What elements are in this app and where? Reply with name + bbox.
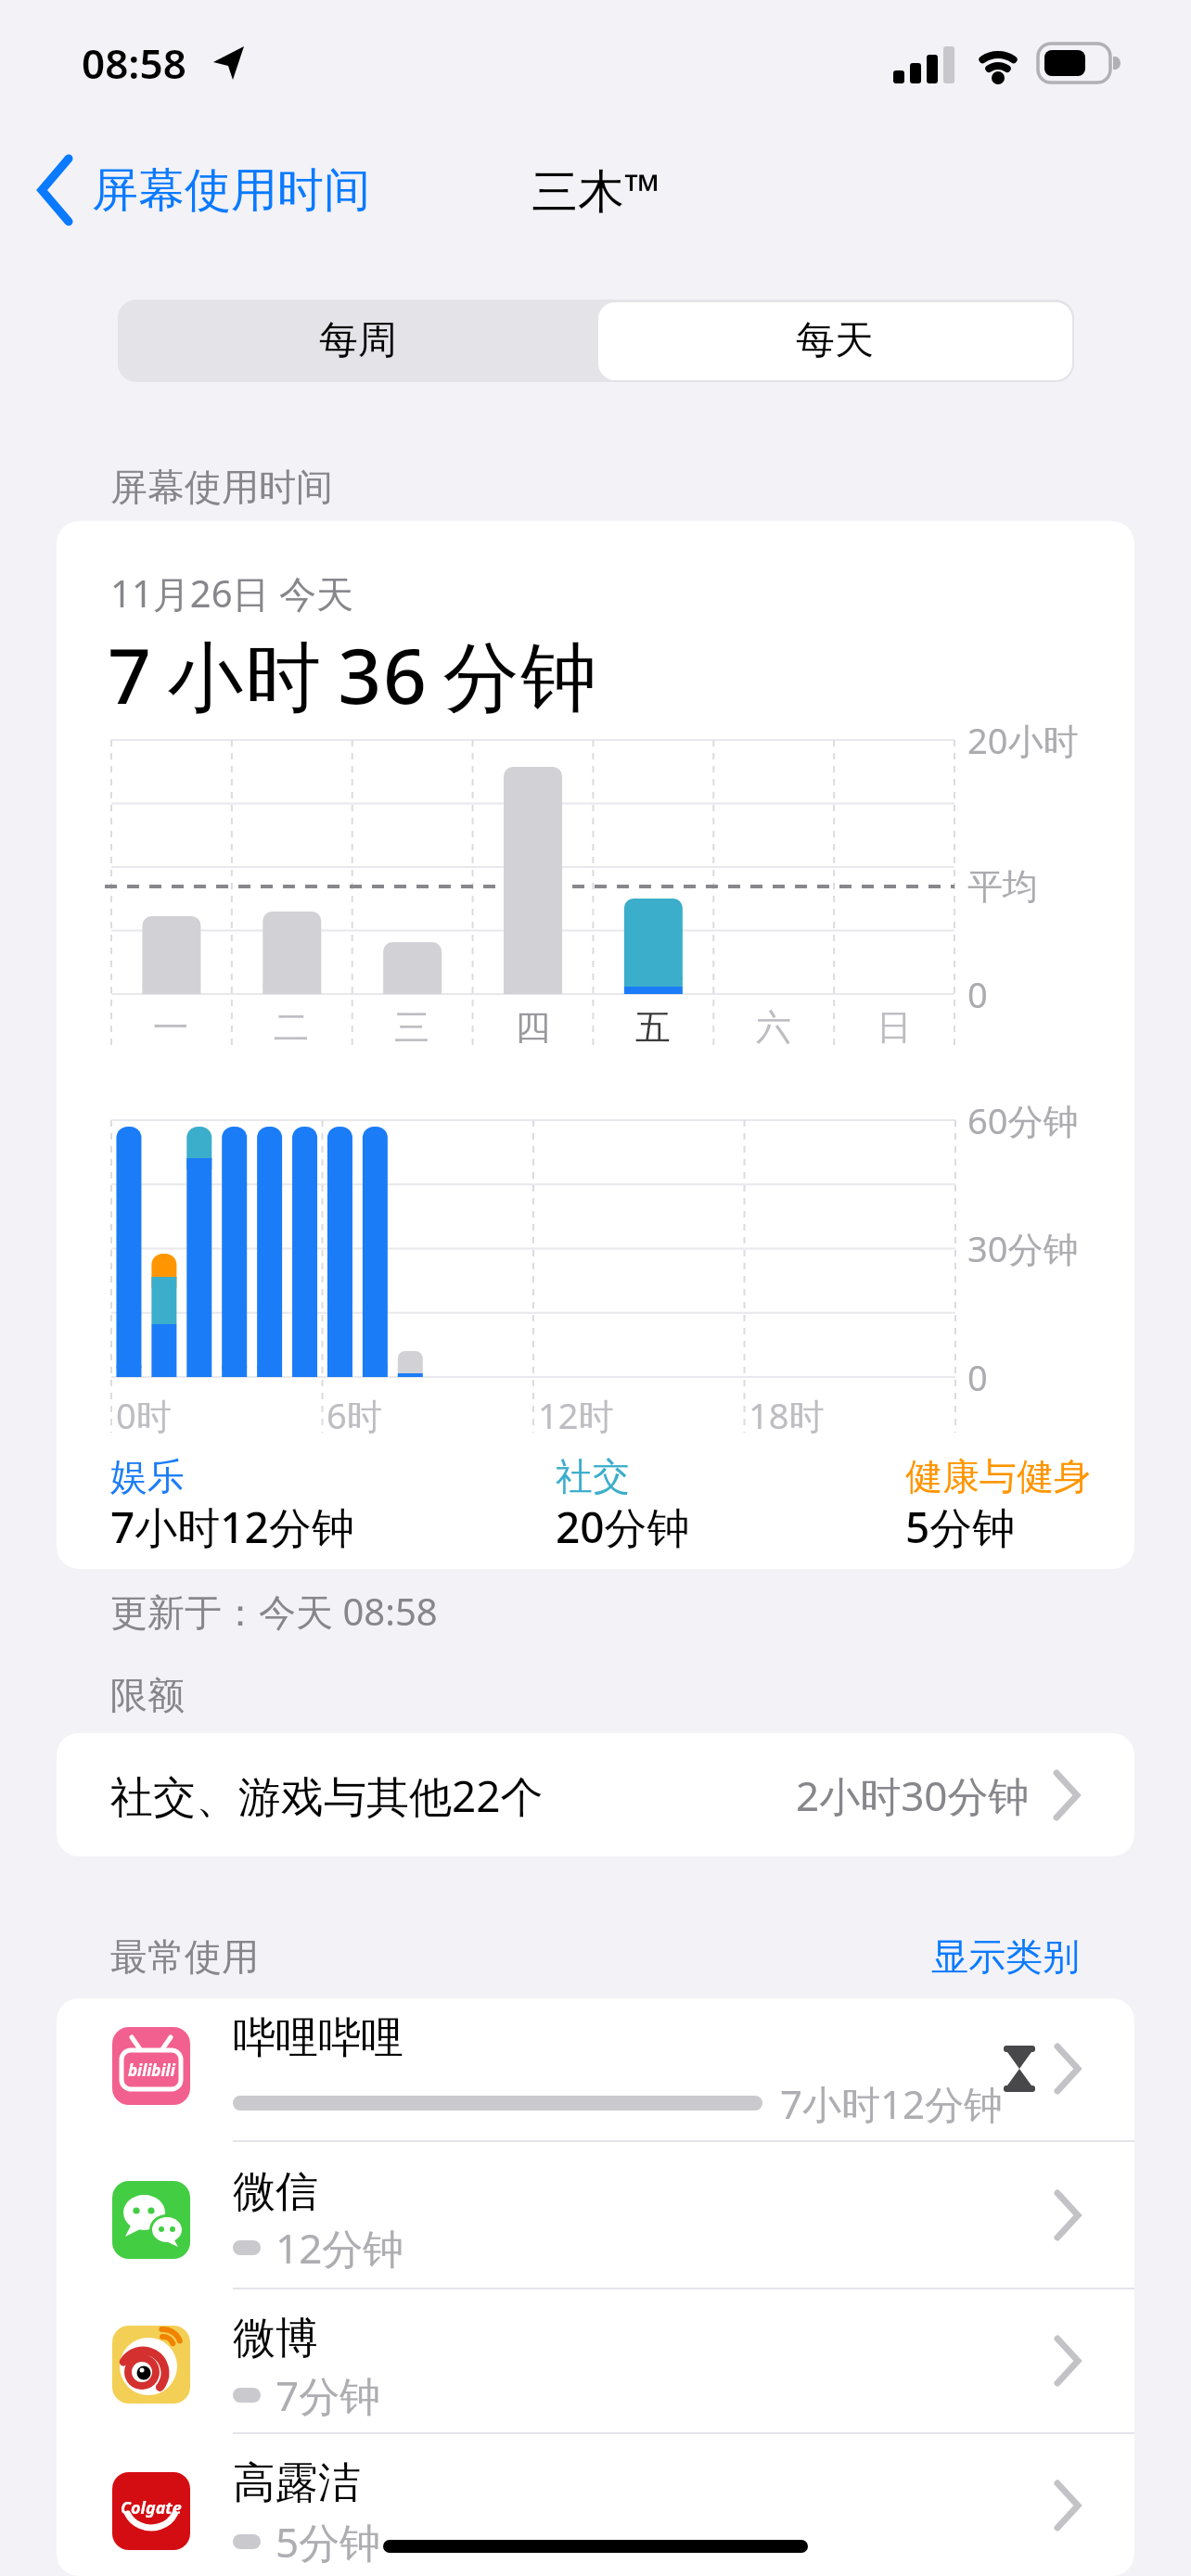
- staticText: 二: [274, 1005, 309, 1050]
- staticText: 社交: [556, 1453, 630, 1499]
- staticText: 2小时30分钟: [796, 1767, 1030, 1823]
- staticText: 三: [394, 1005, 429, 1050]
- staticText: 健康与健身: [905, 1453, 1091, 1499]
- staticText: 屏幕使用时间: [110, 464, 333, 510]
- button[interactable]: [57, 2141, 1134, 2289]
- staticText: 20小时: [967, 716, 1079, 764]
- staticText: 六: [756, 1005, 791, 1050]
- staticText: 高露洁: [233, 2456, 361, 2510]
- staticText: 每天: [796, 316, 874, 365]
- button[interactable]: [57, 1733, 1134, 1856]
- staticText: Colgate: [121, 2496, 182, 2519]
- button[interactable]: [57, 1998, 1134, 2141]
- staticText: 社交、游戏与其他22个: [110, 1766, 544, 1825]
- button[interactable]: [894, 1919, 1080, 1994]
- staticText: 12时: [538, 1391, 614, 1439]
- staticText: 三木™: [531, 159, 660, 222]
- staticText: 显示类别: [931, 1933, 1080, 1980]
- staticText: 20分钟: [556, 1498, 690, 1556]
- staticText: 四: [515, 1005, 550, 1050]
- staticText: 五: [635, 1005, 671, 1050]
- staticText: 11月26日 今天: [110, 567, 353, 618]
- staticText: 哔哩哔哩: [233, 2011, 403, 2065]
- button[interactable]: [57, 2433, 1134, 2576]
- staticText: 微信: [233, 2165, 318, 2219]
- button[interactable]: [30, 148, 401, 232]
- staticText: 平均: [967, 864, 1038, 909]
- staticText: 0: [967, 1353, 988, 1401]
- staticText: 微博: [233, 2312, 318, 2366]
- staticText: 0时: [116, 1391, 172, 1439]
- button[interactable]: [57, 2289, 1134, 2433]
- staticText: 日: [877, 1005, 912, 1050]
- staticText: 6时: [327, 1391, 382, 1439]
- staticText: 限额: [110, 1672, 185, 1718]
- staticText: 7分钟: [275, 2367, 381, 2423]
- staticText: bilibili: [128, 2060, 175, 2081]
- staticText: 0: [967, 970, 988, 1018]
- staticText: 08:58: [82, 35, 186, 91]
- staticText: 一: [153, 1005, 188, 1050]
- staticText: 18时: [749, 1391, 825, 1439]
- button[interactable]: [118, 300, 595, 382]
- staticText: 娱乐: [110, 1453, 185, 1499]
- staticText: 7小时12分钟: [780, 2077, 1004, 2130]
- staticText: 最常使用: [110, 1933, 259, 1980]
- staticText: 更新于：今天 08:58: [110, 1586, 438, 1637]
- staticText: 30分钟: [967, 1224, 1079, 1272]
- staticText: 屏幕使用时间: [92, 161, 370, 220]
- staticText: 7小时12分钟: [110, 1498, 354, 1556]
- staticText: 60分钟: [967, 1096, 1079, 1144]
- staticText: 5分钟: [905, 1498, 1016, 1556]
- staticText: 5分钟: [275, 2514, 381, 2570]
- staticText: 7 小时 36 分钟: [108, 622, 599, 726]
- staticText: 每周: [319, 316, 397, 365]
- button[interactable]: [598, 302, 1072, 380]
- staticText: 12分钟: [275, 2220, 404, 2276]
